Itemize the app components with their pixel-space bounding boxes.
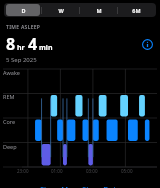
- staticText: 05:00: [121, 168, 133, 174]
- staticText: Deep: [3, 143, 17, 150]
- staticText: min: [39, 43, 53, 53]
- button[interactable]: Show More Sleep Data: [0, 184, 160, 188]
- staticText: 23:00: [17, 168, 29, 174]
- staticText: REM: [3, 93, 15, 100]
- staticText: Core: [3, 118, 16, 125]
- button[interactable]: W: [43, 4, 78, 16]
- staticText: hr: [17, 43, 25, 53]
- staticText: 4: [28, 33, 38, 55]
- staticText: 01:00: [51, 168, 63, 174]
- staticText: Awake: [3, 69, 20, 76]
- staticText: D: [21, 7, 26, 14]
- staticText: TIME ASLEEP: [6, 24, 41, 31]
- button[interactable]: D: [6, 4, 40, 16]
- staticText: Show More Sleep Data: [40, 184, 121, 188]
- staticText: 8: [6, 33, 16, 55]
- staticText: 5 Sep 2025: [6, 56, 37, 64]
- staticText: 03:00: [86, 168, 98, 174]
- button[interactable]: M: [81, 4, 116, 16]
- staticText: 6M: [132, 7, 141, 14]
- button[interactable]: Info: [140, 37, 154, 51]
- button[interactable]: 6M: [119, 4, 154, 16]
- staticText: M: [96, 7, 102, 14]
- staticText: W: [58, 7, 64, 14]
